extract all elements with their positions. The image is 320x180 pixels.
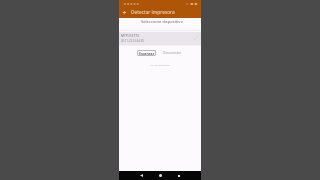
button[interactable]: Recent apps <box>174 171 183 180</box>
staticText: Detectar impresora <box>131 9 175 16</box>
staticText: MTP-II 3773 <box>121 34 139 38</box>
button[interactable]: Home <box>156 171 165 180</box>
button[interactable]: Escanear <box>137 50 156 56</box>
staticText: Seleccione dispositivo <box>141 19 183 25</box>
staticText: No hay dispositivo <box>150 64 170 67</box>
button[interactable]: Back <box>119 7 130 18</box>
staticText: Desconectar <box>163 51 182 55</box>
button[interactable]: Desconectar <box>162 50 183 56</box>
button[interactable]: MTP-II 3773 <box>119 32 201 45</box>
staticText: 00:11:22:33:44:55 <box>121 39 144 43</box>
staticText: Escanear <box>139 51 155 56</box>
button[interactable]: Back <box>137 171 146 180</box>
